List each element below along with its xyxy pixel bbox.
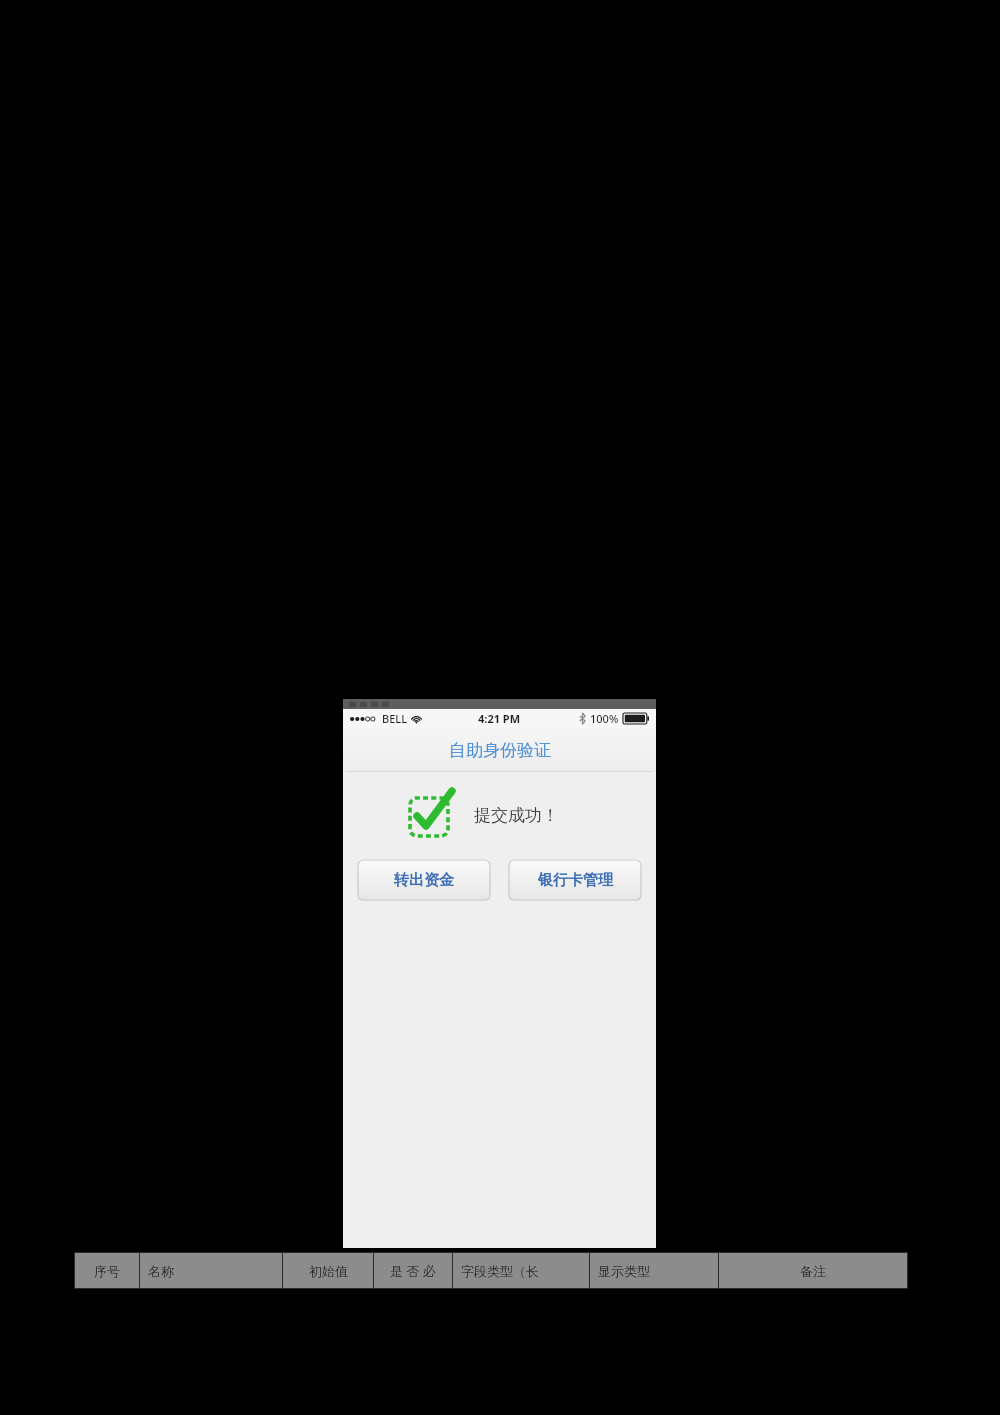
staticText: 备注 — [800, 1263, 826, 1279]
staticText: 转出资金 — [394, 871, 454, 890]
staticText: 序号 — [94, 1263, 120, 1279]
staticText: 自助身份验证 — [449, 740, 551, 761]
staticText: 初始值 — [309, 1263, 348, 1279]
button[interactable]: 转出资金 — [357, 859, 491, 901]
staticText: 名称 — [148, 1263, 174, 1279]
staticText: BELL — [382, 711, 408, 726]
staticText: 是 否 必 — [390, 1262, 436, 1280]
staticText: 100% — [590, 711, 619, 726]
staticText: 银行卡管理 — [538, 871, 613, 890]
staticText: 显示类型 — [598, 1263, 650, 1279]
button[interactable]: 银行卡管理 — [508, 859, 642, 901]
staticText: 字段类型（长 — [461, 1263, 539, 1279]
staticText: 4:21 PM — [478, 711, 521, 726]
staticText: 提交成功！ — [474, 805, 559, 826]
